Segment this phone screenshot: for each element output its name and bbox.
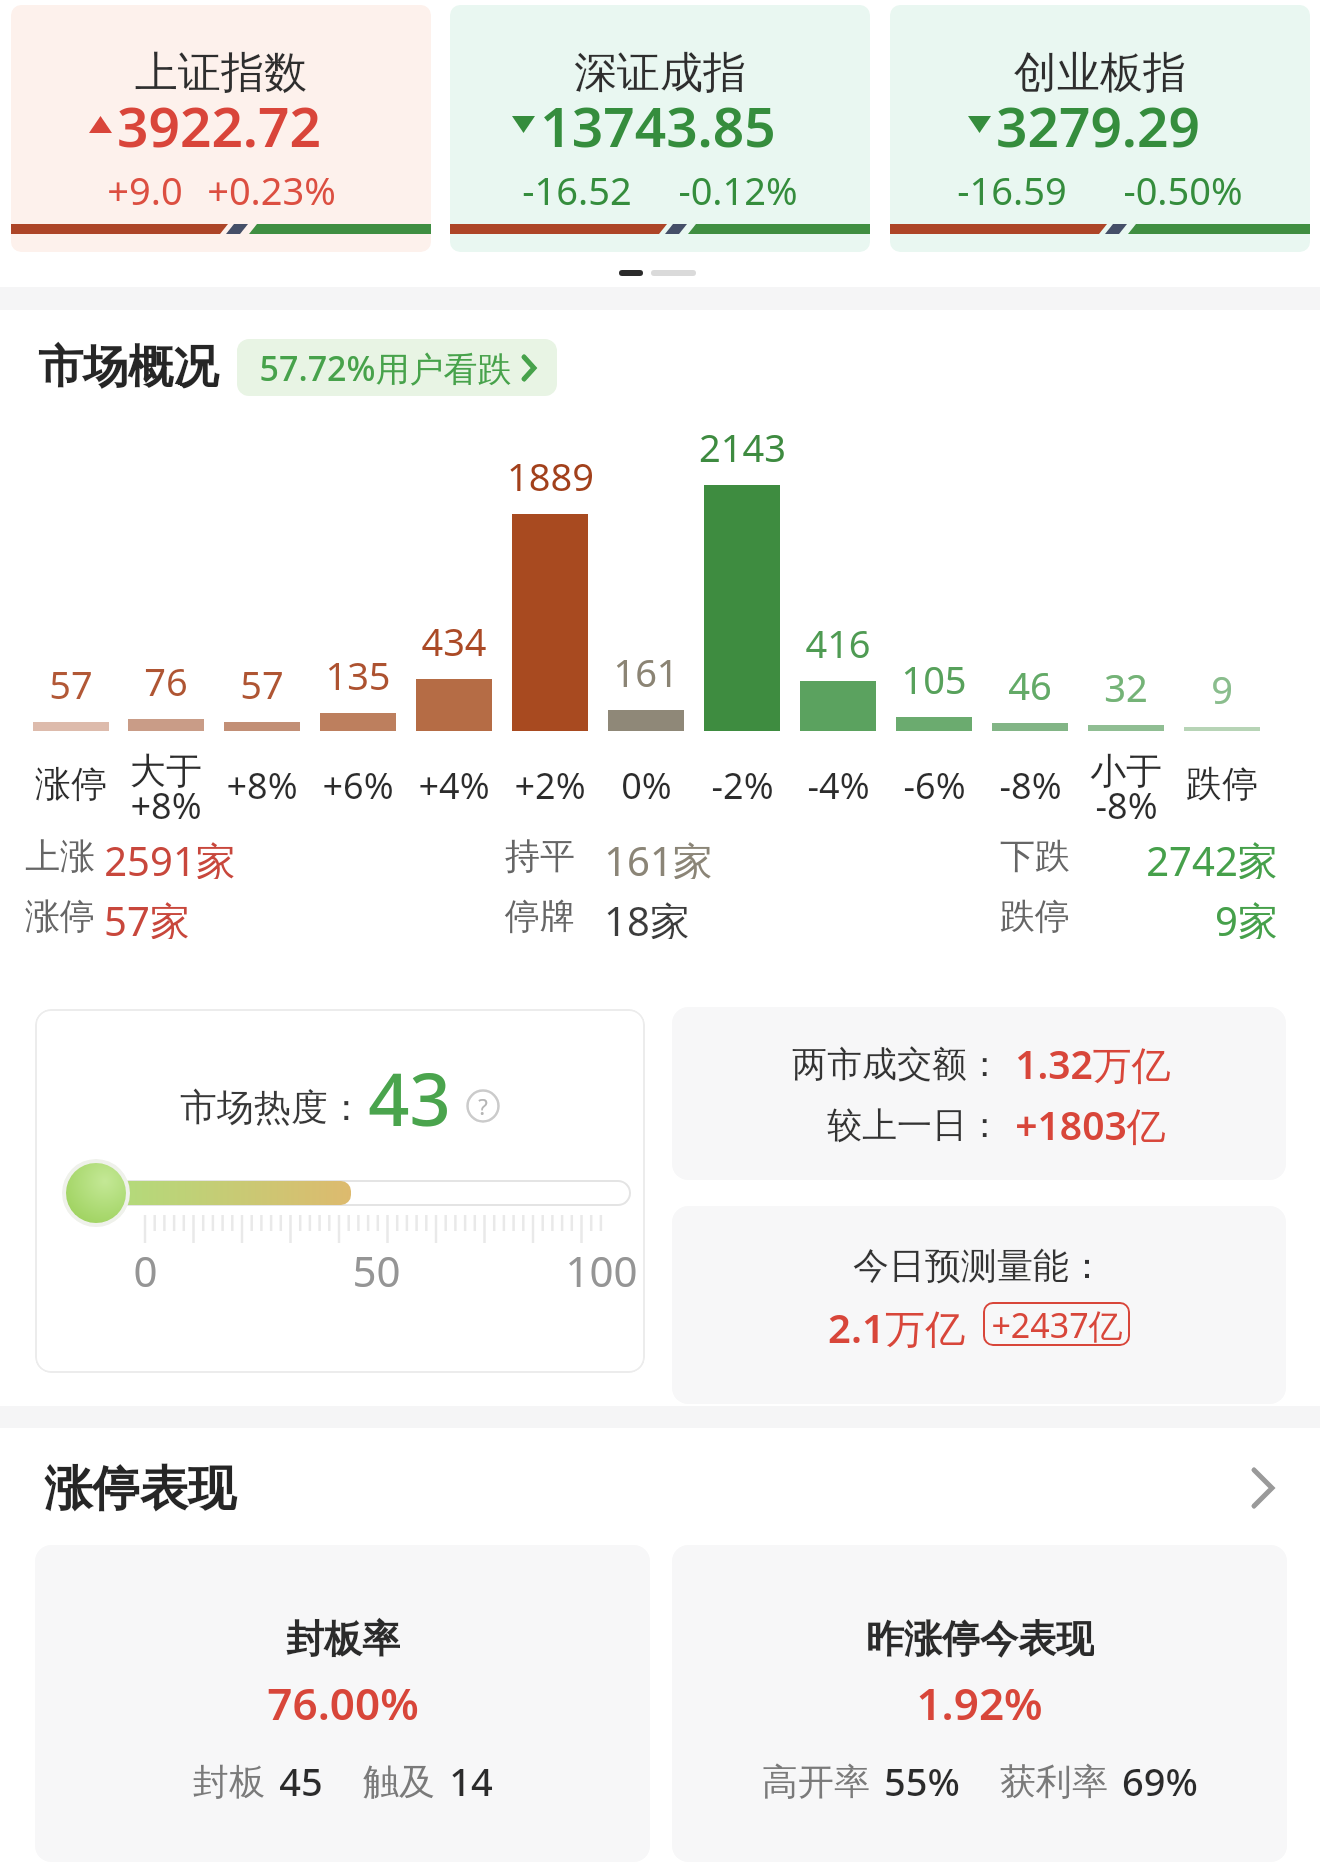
staticText: 9	[1211, 663, 1233, 705]
staticText: 45	[279, 1755, 323, 1807]
staticText: 1.92%	[916, 1673, 1043, 1729]
staticText: +2437亿	[991, 1302, 1123, 1346]
staticText: 9家	[1215, 893, 1278, 939]
staticText: 0%	[621, 761, 672, 803]
staticText: 涨停表现	[44, 1459, 236, 1519]
button[interactable]: 市场热度：	[35, 1009, 645, 1373]
staticText: +6%	[322, 761, 394, 803]
staticText: 市场热度：	[180, 1084, 365, 1131]
button[interactable]: 两市成交额：	[672, 1007, 1286, 1180]
staticText: 持平	[505, 834, 575, 878]
staticText: 市场概况	[38, 339, 218, 396]
staticText: 161家	[604, 833, 713, 879]
staticText: 416	[805, 617, 871, 659]
staticText: 105	[901, 653, 967, 695]
staticText: -0.12%	[678, 164, 798, 210]
staticText: 下跌	[1000, 834, 1070, 878]
staticText: 上涨	[25, 834, 95, 878]
staticText: 0	[133, 1242, 158, 1290]
staticText: 封板	[193, 1759, 265, 1804]
staticText: 触及	[363, 1759, 435, 1804]
staticText: +1803亿	[1015, 1098, 1166, 1151]
staticText: +2%	[514, 761, 586, 803]
staticText: -16.59	[957, 164, 1067, 210]
staticText: 55%	[884, 1755, 960, 1807]
staticText: 1.32万亿	[1015, 1037, 1171, 1090]
staticText: 跌停	[1000, 894, 1070, 938]
staticText: 69%	[1122, 1755, 1198, 1807]
staticText: 100	[565, 1242, 638, 1290]
staticText: 涨停	[35, 761, 107, 803]
button[interactable]: 深证成指	[450, 5, 870, 252]
staticText: 76.00%	[267, 1673, 419, 1729]
button[interactable]: 封板率	[35, 1545, 650, 1862]
staticText: -16.52	[522, 164, 632, 210]
staticText: 获利率	[1000, 1759, 1108, 1804]
staticText: 57	[240, 658, 284, 700]
staticText: 14	[449, 1755, 493, 1807]
staticText: 2591家	[104, 833, 236, 879]
button[interactable]: 今日预测量能：	[672, 1206, 1286, 1404]
staticText: 3279.29	[996, 88, 1200, 150]
staticText: 2143	[699, 421, 786, 463]
staticText: -6%	[903, 761, 966, 803]
staticText: 57家	[104, 893, 190, 939]
staticText: 135	[325, 649, 391, 691]
staticText: 18家	[604, 893, 690, 939]
staticText: 两市成交额：	[792, 1042, 1002, 1086]
staticText: ?	[478, 1091, 488, 1121]
staticText: -0.50%	[1123, 164, 1243, 210]
staticText: 今日预测量能：	[853, 1243, 1105, 1288]
staticText: 2.1万亿	[828, 1300, 965, 1348]
staticText: 上证指数	[135, 46, 307, 100]
staticText: +8%	[226, 761, 298, 803]
staticText: 较上一日：	[827, 1103, 1002, 1147]
staticText: 76	[144, 655, 188, 697]
staticText: 3922.72	[117, 88, 321, 150]
button[interactable]: 创业板指	[890, 5, 1310, 252]
staticText: 深证成指	[574, 46, 746, 100]
button[interactable]	[1252, 1468, 1274, 1508]
staticText: 57	[49, 658, 93, 700]
staticText: 434	[421, 615, 487, 657]
staticText: 停牌	[505, 894, 575, 938]
staticText: 小于	[1090, 748, 1162, 790]
staticText: 1889	[507, 450, 594, 492]
staticText: 2742家	[1146, 833, 1278, 879]
staticText: 涨停	[25, 894, 95, 938]
staticText: 高开率	[762, 1759, 870, 1804]
staticText: +4%	[418, 761, 490, 803]
staticText: -8%	[999, 761, 1062, 803]
staticText: +0.23%	[207, 164, 336, 210]
staticText: 57.72%用户看跌	[259, 345, 512, 391]
staticText: 32	[1104, 661, 1148, 703]
staticText: +8%	[130, 781, 202, 823]
staticText: -4%	[807, 761, 870, 803]
staticText: 46	[1008, 659, 1052, 701]
staticText: 大于	[130, 748, 202, 790]
staticText: 封板率	[286, 1615, 400, 1661]
staticText: 13743.85	[540, 88, 776, 150]
button[interactable]: 昨涨停今表现	[672, 1545, 1287, 1862]
staticText: -2%	[711, 761, 774, 803]
staticText: 50	[352, 1242, 401, 1290]
staticText: 创业板指	[1014, 46, 1186, 100]
staticText: 43	[368, 1049, 451, 1147]
button[interactable]: 上证指数	[11, 5, 431, 252]
button[interactable]: 57.72%用户看跌	[237, 339, 557, 396]
staticText: 161	[613, 646, 679, 688]
staticText: 昨涨停今表现	[866, 1615, 1094, 1661]
staticText: +9.0	[107, 164, 183, 210]
staticText: 跌停	[1186, 761, 1258, 803]
staticText: -8%	[1095, 781, 1158, 823]
